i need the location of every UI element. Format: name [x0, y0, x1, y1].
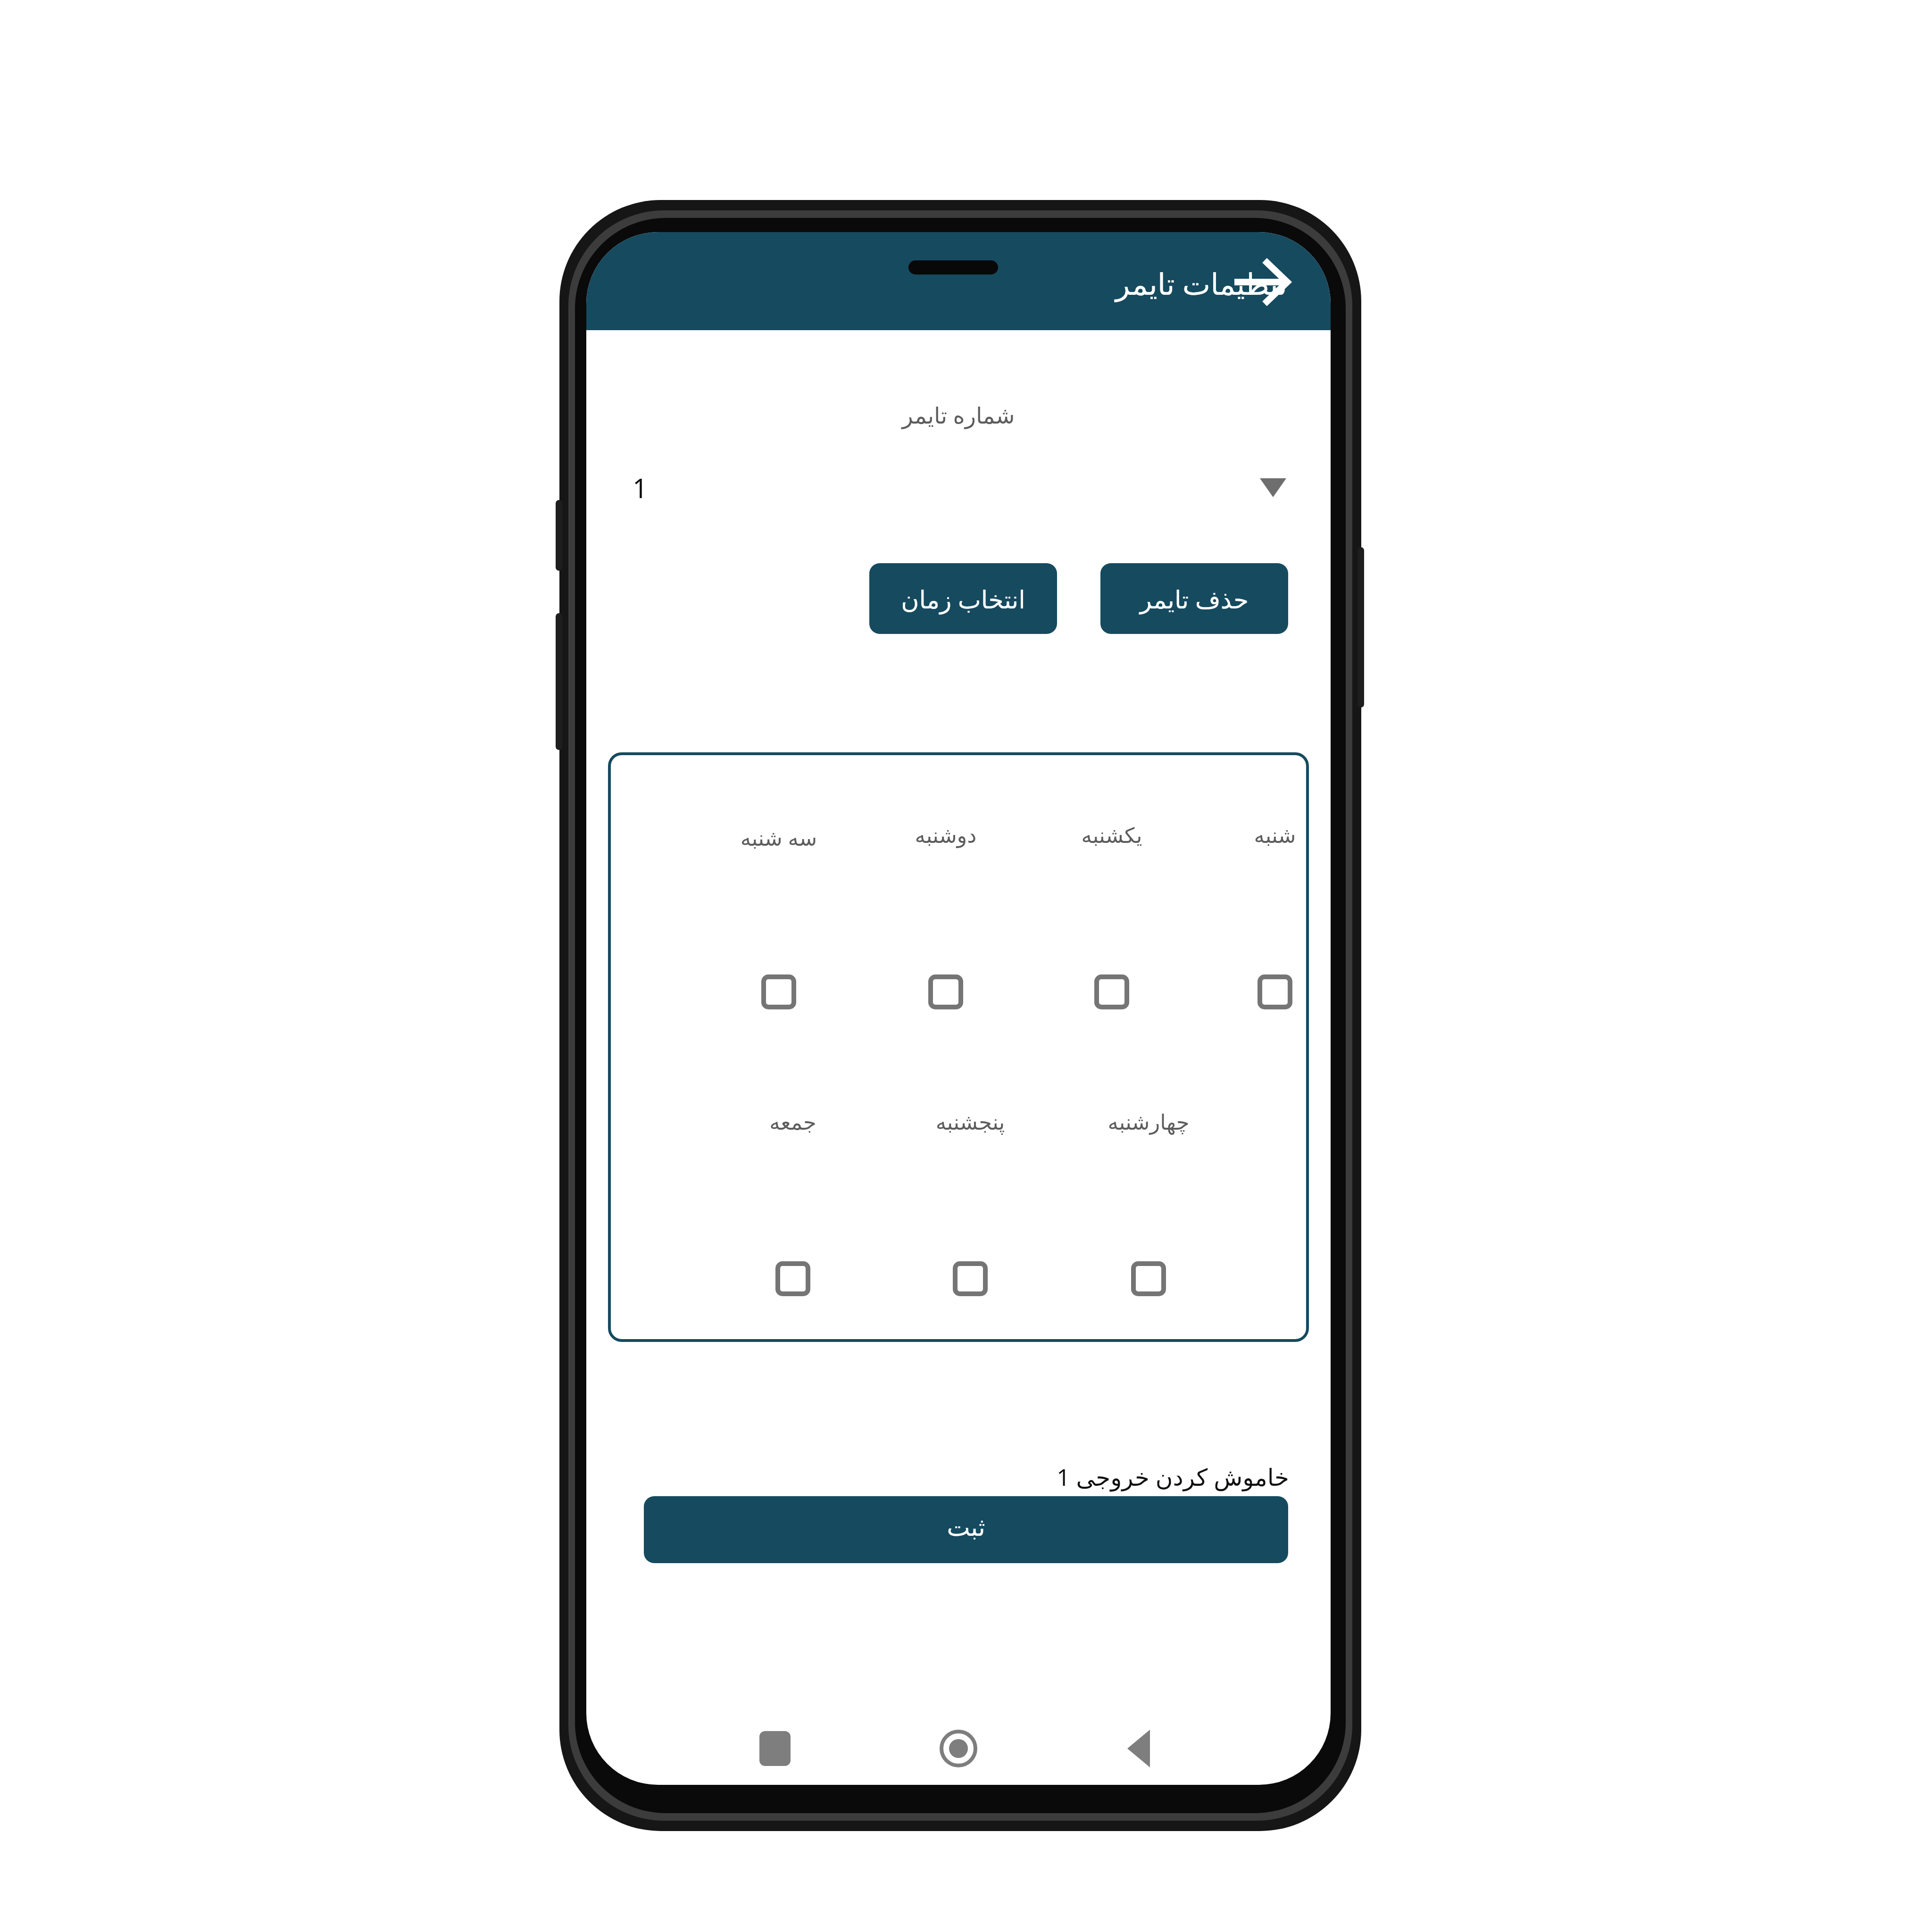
button[interactable]: یکشنبه: [1089, 969, 1134, 1015]
button[interactable]: Home: [933, 1723, 984, 1774]
staticText: یکشنبه: [1027, 823, 1197, 848]
staticText: 1: [633, 470, 648, 506]
button[interactable]: سه شنبه: [756, 969, 801, 1015]
staticText: سه شنبه: [694, 823, 864, 852]
staticText: دوشنبه: [861, 823, 1031, 848]
staticText: جمعه: [708, 1110, 878, 1134]
staticText: شماره تایمر: [841, 400, 1076, 430]
staticText: انتخاب زمان: [869, 582, 1057, 616]
button[interactable]: پنجشنبه: [948, 1256, 993, 1301]
button[interactable]: حذف تایمر: [1100, 563, 1288, 634]
staticText: حذف تایمر: [1100, 582, 1288, 616]
button[interactable]: Recent apps: [749, 1723, 801, 1774]
button[interactable]: انتخاب زمان: [869, 563, 1057, 634]
staticText: چهارشنبه: [1064, 1110, 1233, 1134]
button[interactable]: شنبه: [1252, 969, 1298, 1015]
button[interactable]: دوشنبه: [923, 969, 968, 1015]
staticText: پنجشنبه: [885, 1110, 1055, 1134]
button[interactable]: Back: [1232, 252, 1294, 312]
button[interactable]: ثبت: [644, 1496, 1288, 1563]
button[interactable]: 1: [619, 449, 1299, 525]
staticText: شنبه: [1190, 823, 1331, 848]
staticText: ثبت: [644, 1513, 1288, 1542]
staticText: تنظیمات تایمر: [1049, 263, 1287, 304]
button[interactable]: Back: [1114, 1723, 1166, 1774]
staticText: خاموش کردن خروجی 1: [916, 1461, 1289, 1493]
button[interactable]: جمعه: [770, 1256, 816, 1301]
button[interactable]: چهارشنبه: [1126, 1256, 1171, 1301]
